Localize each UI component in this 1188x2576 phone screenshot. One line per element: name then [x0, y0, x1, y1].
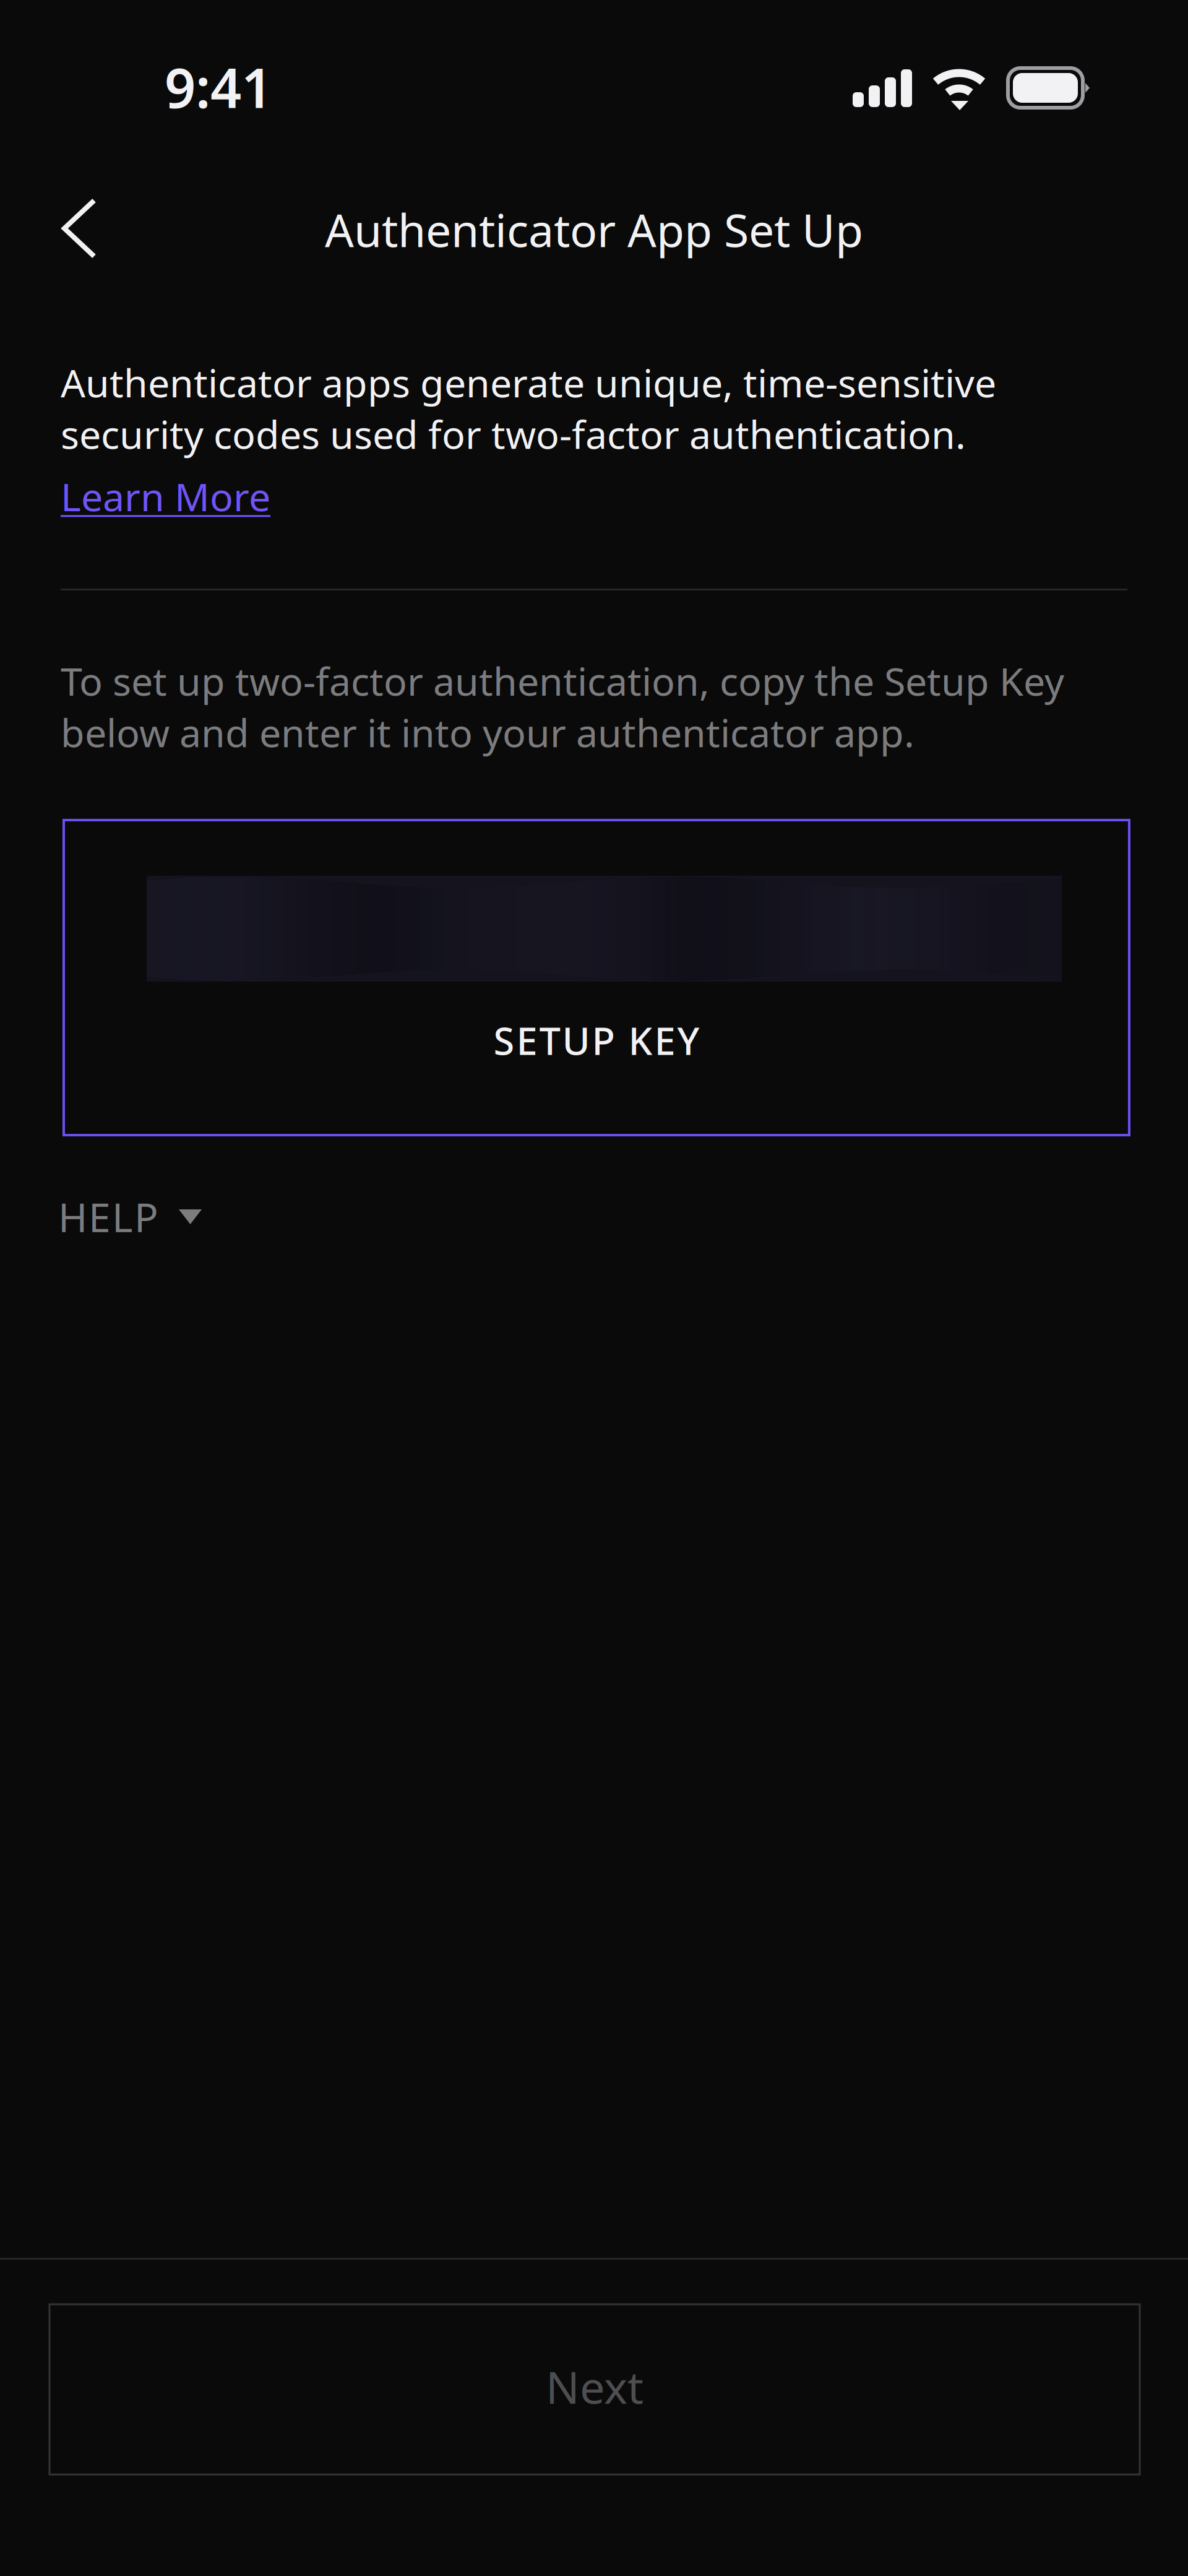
staticText: SETUP KEY — [493, 1015, 699, 1065]
staticText: 9:41 — [165, 51, 272, 123]
staticText: Authenticator apps generate unique, time… — [61, 357, 996, 459]
button[interactable]: Next — [49, 2304, 1140, 2474]
button[interactable]: Learn More — [61, 470, 270, 522]
button[interactable]: HELP — [58, 1183, 269, 1251]
staticText: HELP — [58, 1191, 158, 1243]
staticText: Authenticator App Set Up — [325, 199, 863, 260]
staticText: Next — [546, 2357, 643, 2416]
button[interactable]: Back — [30, 179, 129, 278]
button[interactable]: SETUP KEY — [64, 820, 1129, 1135]
staticText: To set up two-factor authentication, cop… — [61, 655, 1064, 758]
staticText: Learn More — [61, 470, 270, 522]
